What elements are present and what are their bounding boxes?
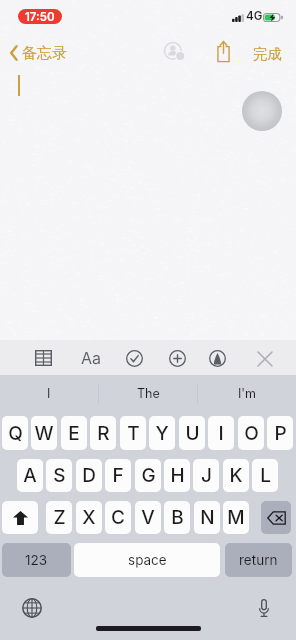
staticText: L [260, 464, 271, 487]
button[interactable]: U [179, 416, 205, 450]
button[interactable]: J [193, 459, 219, 492]
staticText: W [34, 422, 54, 445]
button[interactable]: Checklist [124, 348, 145, 369]
button[interactable]: 备忘录 [10, 42, 67, 64]
staticText: I'm [238, 386, 257, 401]
button[interactable]: Aa [78, 347, 104, 368]
staticText: U [185, 422, 200, 445]
button[interactable]: Table [31, 347, 55, 369]
staticText: Q [8, 422, 23, 445]
staticText: S [53, 464, 66, 487]
staticText: J [201, 464, 212, 487]
staticText: 4G [246, 9, 263, 23]
staticText: Y [155, 422, 169, 445]
button[interactable]: Add people [163, 40, 187, 64]
button[interactable]: 123 [2, 543, 71, 577]
staticText: 完成 [253, 45, 282, 63]
staticText: D [82, 464, 96, 487]
button[interactable]: R [90, 416, 116, 450]
button[interactable]: H [164, 459, 190, 492]
staticText: The [137, 386, 160, 401]
button[interactable]: return [225, 543, 292, 577]
button[interactable]: D [76, 459, 102, 492]
staticText: T [127, 422, 140, 445]
button[interactable]: C [105, 501, 131, 534]
staticText: O [244, 422, 259, 445]
staticText: X [82, 506, 96, 529]
button[interactable]: The [99, 375, 197, 411]
staticText: space [128, 552, 167, 568]
button[interactable]: X [76, 501, 102, 534]
staticText: I [47, 386, 51, 401]
button[interactable]: N [194, 501, 220, 534]
staticText: F [112, 464, 124, 487]
staticText: A [23, 464, 37, 487]
button[interactable]: B [164, 501, 190, 534]
button[interactable]: Add [167, 348, 188, 369]
staticText: 备忘录 [22, 44, 67, 63]
button[interactable]: O [238, 416, 264, 450]
button[interactable]: K [223, 459, 249, 492]
button[interactable]: Markup [207, 348, 228, 369]
staticText: C [111, 506, 125, 529]
button[interactable]: Close keyboard [254, 348, 275, 369]
staticText: R [97, 422, 110, 445]
button[interactable]: P [267, 416, 293, 450]
button[interactable]: I'm [198, 375, 296, 411]
button[interactable]: L [252, 459, 278, 492]
button[interactable]: I [0, 375, 98, 411]
button[interactable]: Delete [261, 501, 291, 534]
button[interactable]: W [31, 416, 57, 450]
button[interactable]: S [46, 459, 72, 492]
staticText: I [218, 422, 224, 445]
button[interactable]: 完成 [253, 45, 282, 63]
button[interactable]: Share [212, 40, 235, 63]
button[interactable]: G [135, 459, 161, 492]
button[interactable]: E [61, 416, 87, 450]
staticText: H [170, 464, 185, 487]
button[interactable]: T [120, 416, 146, 450]
staticText: B [171, 506, 184, 529]
button[interactable]: A [17, 459, 43, 492]
staticText: Z [53, 506, 66, 529]
button[interactable]: AssistiveTouch [242, 91, 282, 131]
button[interactable]: Z [46, 501, 72, 534]
button[interactable]: I [208, 416, 234, 450]
button[interactable]: M [223, 501, 249, 534]
staticText: K [229, 464, 243, 487]
staticText: Aa [81, 348, 102, 367]
button[interactable]: V [135, 501, 161, 534]
staticText: 123 [25, 552, 48, 568]
staticText: P [274, 422, 287, 445]
button[interactable]: F [105, 459, 131, 492]
button[interactable]: space [74, 543, 220, 577]
button[interactable]: Dictation [252, 596, 275, 619]
staticText: V [141, 506, 155, 529]
button[interactable]: Change language [20, 596, 43, 619]
staticText: G [141, 464, 156, 487]
button[interactable]: Q [2, 416, 28, 450]
staticText: N [200, 506, 215, 529]
staticText: return [239, 552, 278, 568]
button[interactable]: Y [149, 416, 175, 450]
button[interactable]: Shift [2, 501, 38, 534]
staticText: M [227, 506, 245, 529]
staticText: E [68, 422, 80, 445]
staticText: 17:50 [25, 10, 55, 24]
